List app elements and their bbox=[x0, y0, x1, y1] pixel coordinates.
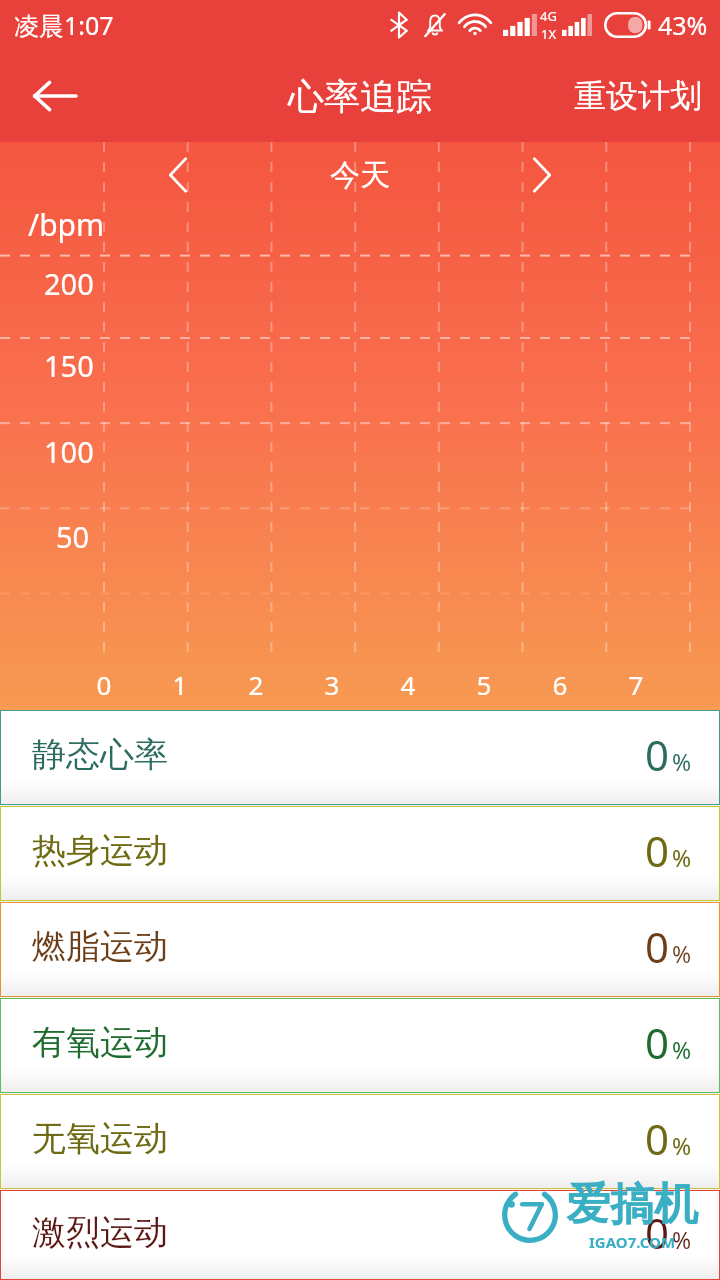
button[interactable]: Next day bbox=[514, 147, 570, 203]
staticText: 150 bbox=[44, 346, 94, 385]
staticText: 0 bbox=[86, 667, 122, 702]
staticText: IGAO7.COM bbox=[589, 1232, 676, 1252]
staticText: 静态心率 bbox=[32, 733, 168, 776]
staticText: 3 bbox=[314, 667, 350, 702]
button[interactable]: 静态心率 bbox=[0, 710, 720, 805]
staticText: 1X bbox=[541, 25, 557, 43]
staticText: /bpm bbox=[28, 204, 105, 245]
staticText: 爱搞机 bbox=[566, 1177, 698, 1232]
staticText: 5 bbox=[466, 667, 502, 702]
staticText: 7 bbox=[618, 667, 654, 702]
staticText: 燃脂运动 bbox=[32, 925, 168, 968]
button[interactable]: 燃脂运动 bbox=[0, 902, 720, 997]
staticText: 0 bbox=[645, 1110, 670, 1167]
staticText: 2 bbox=[238, 667, 274, 702]
staticText: 热身运动 bbox=[32, 829, 168, 872]
staticText: 6 bbox=[542, 667, 578, 702]
staticText: 200 bbox=[44, 264, 94, 303]
staticText: 0 bbox=[645, 726, 670, 783]
staticText: 1 bbox=[162, 667, 198, 702]
staticText: 0 bbox=[645, 1014, 670, 1071]
staticText: 50 bbox=[56, 517, 90, 556]
staticText: 心率追踪 bbox=[288, 74, 432, 119]
staticText: 重设计划 bbox=[574, 76, 702, 116]
staticText: % bbox=[672, 938, 692, 969]
staticText: % bbox=[672, 1034, 692, 1065]
staticText: 100 bbox=[44, 432, 94, 471]
staticText: 0 bbox=[645, 918, 670, 975]
staticText: 激烈运动 bbox=[32, 1211, 168, 1254]
staticText: % bbox=[672, 1224, 692, 1255]
button[interactable]: 无氧运动 bbox=[0, 1094, 720, 1189]
button[interactable]: 有氧运动 bbox=[0, 998, 720, 1093]
button[interactable]: 激烈运动 bbox=[0, 1190, 720, 1280]
staticText: % bbox=[672, 1130, 692, 1161]
button[interactable]: 热身运动 bbox=[0, 806, 720, 901]
staticText: 0 bbox=[645, 822, 670, 879]
staticText: 无氧运动 bbox=[32, 1117, 168, 1160]
button[interactable]: 重设计划 bbox=[556, 62, 720, 130]
button[interactable]: Back bbox=[20, 62, 88, 130]
staticText: 今天 bbox=[330, 156, 390, 194]
staticText: % bbox=[672, 842, 692, 873]
staticText: 4 bbox=[390, 667, 426, 702]
staticText: 43% bbox=[658, 8, 708, 42]
staticText: % bbox=[672, 746, 692, 777]
staticText: 0 bbox=[645, 1204, 670, 1261]
staticText: 4G bbox=[540, 7, 557, 25]
staticText: 有氧运动 bbox=[32, 1021, 168, 1064]
staticText: 凌晨1:07 bbox=[14, 8, 114, 42]
button[interactable]: Previous day bbox=[150, 147, 206, 203]
